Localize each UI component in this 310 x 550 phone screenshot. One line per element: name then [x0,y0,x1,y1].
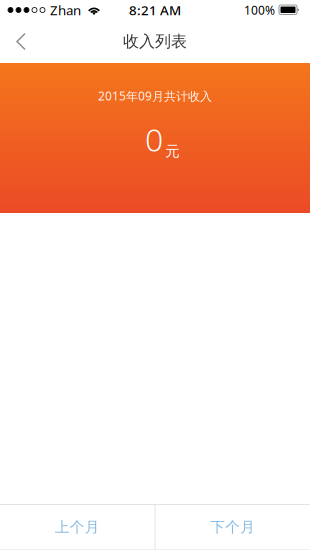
staticText: 2015年09月共计收入 [98,88,212,104]
staticText: 元 [165,142,180,160]
staticText: 上个月 [55,518,100,536]
staticText: Zhan [50,1,81,19]
button[interactable]: 下个月 [155,504,310,549]
staticText: 下个月 [210,518,255,536]
staticText: 8:21 AM [129,1,181,19]
staticText: 收入列表 [123,32,187,51]
staticText: 100% [244,2,275,18]
button[interactable]: 上个月 [0,504,154,549]
staticText: 0 [145,118,163,160]
button[interactable]: Back [0,21,40,61]
